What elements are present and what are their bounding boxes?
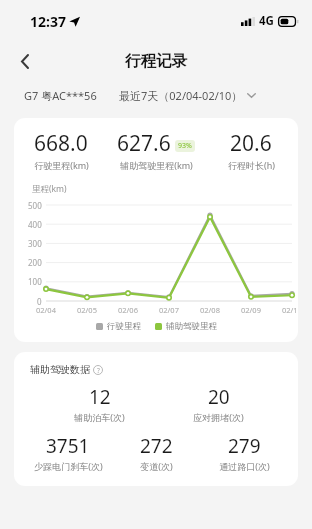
staticText: 应对拥堵(次) xyxy=(193,411,244,423)
staticText: 辅助驾驶里程(km) xyxy=(120,159,193,171)
button[interactable]: G7 粤AC***56 xyxy=(24,88,97,103)
staticText: 变道(次) xyxy=(140,460,173,472)
staticText: 627.6 xyxy=(117,129,171,158)
button[interactable]: 最近7天（02/04-02/10） xyxy=(119,88,256,103)
staticText: 300 xyxy=(28,238,42,249)
staticText: 02/09 xyxy=(241,305,261,315)
staticText: 4G xyxy=(259,13,274,29)
staticText: 行驶里程 xyxy=(107,321,141,332)
button[interactable]: Info xyxy=(93,365,103,375)
staticText: 02/06 xyxy=(118,305,138,315)
button[interactable]: Back xyxy=(6,42,44,80)
staticText: 668.0 xyxy=(34,129,88,158)
staticText: 93% xyxy=(178,141,192,151)
staticText: 辅助驾驶数据 xyxy=(30,363,90,376)
staticText: 100 xyxy=(28,276,42,287)
staticText: 02/07 xyxy=(159,305,179,315)
staticText: 3751 xyxy=(46,433,90,459)
staticText: 里程(km) xyxy=(32,183,67,195)
staticText: 20.6 xyxy=(230,129,272,158)
staticText: 400 xyxy=(28,219,42,230)
staticText: 02/10 xyxy=(282,305,298,315)
staticText: 行驶里程(km) xyxy=(34,159,89,171)
staticText: 行程记录 xyxy=(125,51,187,71)
staticText: 279 xyxy=(228,433,261,459)
staticText: 辅助驾驶里程 xyxy=(166,321,217,332)
staticText: G7 粤AC***56 xyxy=(24,88,97,103)
staticText: 辅助泊车(次) xyxy=(74,411,125,423)
staticText: 272 xyxy=(140,433,173,459)
staticText: 02/04 xyxy=(36,305,56,315)
staticText: 20 xyxy=(208,384,230,410)
staticText: 少踩电门刹车(次) xyxy=(34,460,103,472)
staticText: 12:37 xyxy=(30,12,66,31)
staticText: 02/05 xyxy=(77,305,97,315)
staticText: 12 xyxy=(89,384,111,410)
staticText: 行程时长(h) xyxy=(228,159,275,171)
staticText: 200 xyxy=(28,257,42,268)
staticText: 500 xyxy=(28,200,42,211)
staticText: 02/08 xyxy=(200,305,220,315)
staticText: 最近7天（02/04-02/10） xyxy=(119,88,243,103)
staticText: 0 xyxy=(37,296,42,307)
staticText: 通过路口(次) xyxy=(219,460,270,472)
staticText: ? xyxy=(97,366,100,375)
